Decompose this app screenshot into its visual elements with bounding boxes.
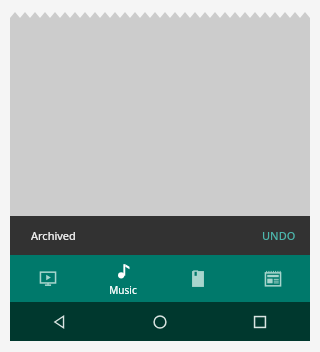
button[interactable]: Back bbox=[10, 302, 110, 341]
staticText: Music bbox=[109, 283, 137, 297]
button[interactable]: Home bbox=[110, 302, 210, 341]
button[interactable]: Movies bbox=[10, 255, 85, 302]
staticText: UNDO bbox=[262, 228, 296, 243]
button[interactable]: Recent apps bbox=[210, 302, 310, 341]
button[interactable]: Books bbox=[160, 255, 235, 302]
button[interactable]: Music bbox=[85, 255, 160, 302]
button[interactable]: Newsstand bbox=[235, 255, 310, 302]
button[interactable]: UNDO bbox=[248, 220, 310, 251]
staticText: Archived bbox=[31, 228, 76, 243]
